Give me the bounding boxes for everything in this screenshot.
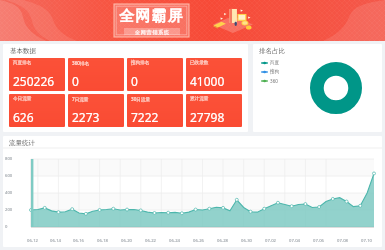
staticText: 2273: [72, 109, 100, 125]
button[interactable]: 百度排名: [9, 58, 65, 91]
staticText: 全网营销系统: [135, 29, 170, 35]
button[interactable]: 累计流量: [186, 94, 242, 127]
staticText: 360: [270, 78, 278, 84]
button[interactable]: 30日流量: [127, 94, 183, 127]
staticText: 06-20: [121, 238, 132, 244]
staticText: 06-16: [73, 238, 84, 244]
staticText: 06-26: [193, 238, 204, 244]
staticText: 07-04: [289, 238, 300, 244]
staticText: 7222: [131, 109, 159, 125]
staticText: 流量统计: [9, 139, 35, 147]
staticText: 250226: [13, 73, 55, 89]
button[interactable]: 百度: [261, 60, 280, 66]
staticText: 7日流量: [72, 96, 89, 102]
staticText: 0: [72, 73, 79, 89]
staticText: 百度: [270, 60, 280, 66]
staticText: 07-08: [337, 238, 348, 244]
staticText: 06-18: [97, 238, 108, 244]
staticText: 07-10: [361, 238, 372, 244]
staticText: 全网霸屏: [119, 7, 184, 26]
staticText: 27798: [190, 109, 225, 125]
staticText: 06-28: [217, 238, 228, 244]
staticText: 30日流量: [131, 96, 151, 102]
button[interactable]: 搜狗排名: [127, 58, 183, 91]
staticText: 400: [5, 190, 13, 196]
staticText: 626: [13, 109, 34, 125]
button[interactable]: 360: [261, 78, 278, 84]
button[interactable]: 7日流量: [68, 94, 124, 127]
button[interactable]: 360排名: [68, 58, 124, 91]
staticText: 06-12: [27, 238, 38, 244]
staticText: 600: [5, 173, 13, 179]
staticText: 41000: [190, 73, 225, 89]
button[interactable]: 今日流量: [9, 94, 65, 127]
staticText: 06-30: [241, 238, 252, 244]
staticText: 800: [5, 156, 13, 162]
staticText: 已收录数: [190, 60, 209, 66]
button[interactable]: 流量统计折线图: [3, 149, 382, 247]
staticText: 06-14: [50, 238, 61, 244]
staticText: 06-22: [145, 238, 156, 244]
staticText: 200: [5, 207, 13, 213]
staticText: 07-02: [265, 238, 276, 244]
staticText: 07-06: [313, 238, 324, 244]
staticText: 0: [131, 73, 138, 89]
staticText: 搜狗排名: [131, 60, 150, 66]
staticText: 累计流量: [190, 96, 209, 102]
staticText: 百度排名: [13, 60, 32, 66]
button[interactable]: 排名占比环形图: [308, 60, 364, 116]
staticText: 基本数据: [10, 47, 36, 55]
button[interactable]: 搜狗: [261, 69, 280, 75]
button[interactable]: 全网霸屏: [0, 0, 385, 41]
staticText: 今日流量: [13, 96, 32, 102]
staticText: 搜狗: [270, 69, 280, 75]
button[interactable]: 已收录数: [186, 58, 242, 91]
staticText: 360排名: [72, 60, 90, 66]
staticText: 06-24: [169, 238, 180, 244]
staticText: 0: [5, 224, 8, 230]
staticText: 排名占比: [259, 47, 285, 55]
